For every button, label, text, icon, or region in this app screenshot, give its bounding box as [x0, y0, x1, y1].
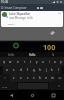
staticText: r — [24, 60, 26, 64]
staticText: new Message: hello — [9, 16, 33, 20]
button[interactable]: Collapse — [58, 12, 61, 15]
staticText: ⌫ — [58, 77, 62, 80]
button[interactable]: e — [14, 57, 21, 66]
staticText: s — [13, 68, 15, 72]
button[interactable]: k — [49, 66, 55, 74]
button[interactable]: v — [31, 74, 37, 82]
button[interactable]: w — [7, 57, 14, 66]
button[interactable]: i — [46, 57, 52, 66]
staticText: e — [17, 60, 19, 64]
staticText: v — [33, 76, 35, 80]
button[interactable]: r — [21, 57, 28, 66]
staticText: hello — [8, 53, 14, 57]
staticText: a — [6, 68, 8, 72]
staticText: m — [51, 76, 54, 80]
button[interactable]: Symbols — [0, 82, 10, 90]
staticText: q — [3, 60, 5, 64]
button[interactable]: l — [55, 66, 61, 74]
button[interactable]: q — [0, 57, 7, 66]
staticText: . — [52, 85, 53, 88]
staticText: D: Smart Composer — [1, 6, 27, 10]
button[interactable]: Backspace — [55, 74, 64, 82]
staticText: h — [39, 68, 41, 72]
button[interactable]: u — [40, 57, 46, 66]
button[interactable]: Back — [7, 90, 15, 100]
button[interactable]: j — [43, 66, 49, 74]
button[interactable]: g — [31, 66, 37, 74]
button[interactable]: n — [43, 74, 49, 82]
button[interactable]: c — [24, 74, 31, 82]
staticText: REPLY — [8, 22, 15, 25]
button[interactable]: o — [52, 57, 58, 66]
staticText: x — [20, 76, 22, 80]
button[interactable]: a — [3, 66, 10, 74]
staticText: 100 — [43, 42, 56, 52]
staticText: ⇧ — [4, 77, 7, 80]
button[interactable]: t — [28, 57, 34, 66]
staticText: k — [51, 68, 53, 72]
button[interactable]: Hello — [22, 52, 43, 57]
button[interactable]: m — [49, 74, 55, 82]
staticText: w — [9, 60, 12, 64]
staticText: p — [60, 60, 62, 64]
staticText: g — [33, 68, 35, 72]
button[interactable]: z — [10, 74, 17, 82]
staticText: t — [30, 60, 32, 64]
button[interactable]: Home — [28, 90, 36, 100]
button[interactable]: Enter — [55, 82, 64, 90]
staticText: hi — [52, 53, 55, 57]
staticText: b — [39, 76, 41, 80]
staticText: 10:46 — [1, 0, 9, 4]
button[interactable]: hello — [0, 52, 22, 57]
staticText: u — [42, 60, 44, 64]
staticText: Hello — [29, 53, 36, 57]
button[interactable]: D: Smart Composer — [0, 4, 64, 11]
staticText: d — [20, 68, 22, 72]
staticText: y — [36, 60, 38, 64]
button[interactable]: b — [37, 74, 43, 82]
button[interactable]: d — [17, 66, 24, 74]
button[interactable]: Luke Skywalker — [1, 11, 63, 27]
button[interactable]: s — [10, 66, 17, 74]
button[interactable]: x — [17, 74, 24, 82]
staticText: o — [54, 60, 56, 64]
staticText: i — [49, 60, 50, 64]
staticText: n — [45, 76, 47, 80]
button[interactable]: hi — [43, 52, 64, 57]
button[interactable]: Shift — [0, 74, 10, 82]
staticText: l — [58, 68, 59, 72]
button[interactable]: REPLY — [8, 22, 15, 25]
button[interactable]: h — [37, 66, 43, 74]
staticText: c — [27, 76, 29, 80]
staticText: ⏎ — [58, 85, 61, 88]
button[interactable]: y — [34, 57, 40, 66]
staticText: z — [13, 76, 15, 80]
staticText: j — [46, 68, 47, 72]
staticText: ?123 — [2, 85, 8, 88]
staticText: f — [27, 68, 28, 72]
button[interactable]: f — [24, 66, 31, 74]
button[interactable]: p — [58, 57, 64, 66]
button[interactable]: Recent apps — [49, 90, 57, 100]
staticText: Luke Skywalker — [9, 12, 31, 16]
